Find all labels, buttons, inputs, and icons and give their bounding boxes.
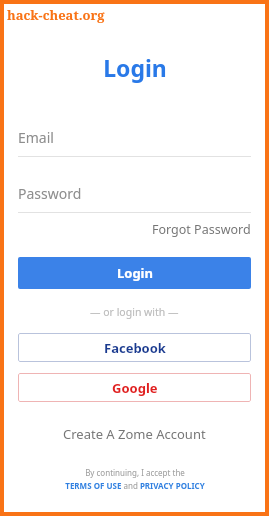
staticText: Email xyxy=(18,128,54,147)
staticText: hack-cheat.org xyxy=(7,6,105,24)
staticText: By continuing, I accept the xyxy=(85,467,185,478)
staticText: — or login with — xyxy=(90,305,179,319)
staticText: Login xyxy=(117,264,153,282)
button[interactable]: TERMS OF USE and PRIVACY POLICY xyxy=(65,480,205,491)
button[interactable]: Login xyxy=(18,257,251,289)
staticText: Facebook xyxy=(104,339,166,357)
staticText: Google xyxy=(112,379,158,397)
staticText: Forgot Password xyxy=(152,221,251,238)
staticText: Create A Zome Account xyxy=(63,425,206,443)
button[interactable]: Create A Zome Account xyxy=(57,422,212,446)
button[interactable]: Forgot Password xyxy=(152,219,251,240)
button[interactable]: Facebook xyxy=(18,333,251,362)
staticText: TERMS OF USE and PRIVACY POLICY xyxy=(65,480,205,491)
button[interactable]: Google xyxy=(18,373,251,402)
staticText: Password xyxy=(18,184,82,203)
staticText: Login xyxy=(103,52,167,83)
